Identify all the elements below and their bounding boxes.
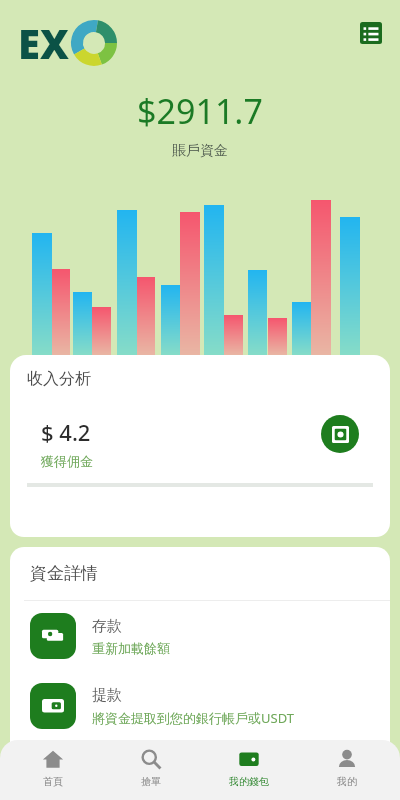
staticText: 存款 (92, 617, 122, 636)
staticText: 資金詳情 (30, 563, 98, 584)
staticText: 獲得佣金 (41, 453, 93, 469)
staticText: 賬戶資金 (172, 142, 228, 160)
staticText: 搶單 (141, 775, 161, 788)
staticText: 首頁 (43, 775, 63, 788)
staticText: 收入分析 (27, 369, 91, 389)
staticText: EX (18, 16, 69, 70)
staticText: 提款 (92, 686, 122, 705)
button[interactable]: 首頁 (8, 740, 98, 800)
button[interactable]: $ 4.2 (27, 403, 373, 515)
staticText: $ 4.2 (41, 417, 91, 447)
staticText: 將資金提取到您的銀行帳戶或USDT (92, 709, 294, 727)
staticText: 我的 (337, 775, 357, 788)
button[interactable]: 存款 (10, 601, 390, 671)
button[interactable]: 我的錢包 (204, 740, 294, 800)
button[interactable]: Records (354, 16, 388, 50)
button[interactable]: 我的 (302, 740, 392, 800)
button[interactable]: 搶單 (106, 740, 196, 800)
staticText: 我的錢包 (229, 775, 269, 788)
staticText: $2911.7 (137, 88, 263, 134)
staticText: 重新加載餘額 (92, 640, 170, 656)
button[interactable]: 提款 (10, 671, 390, 741)
